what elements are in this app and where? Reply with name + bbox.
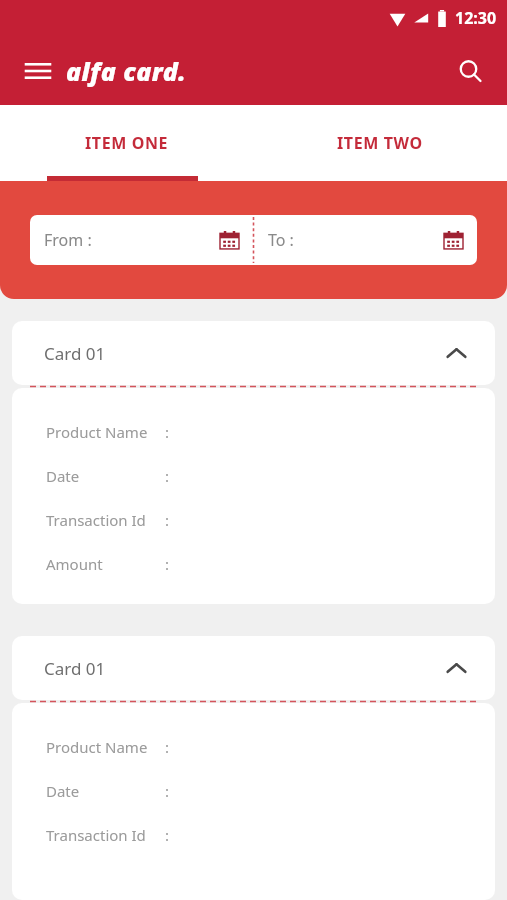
staticText: : bbox=[165, 825, 170, 845]
staticText: : bbox=[165, 781, 170, 801]
staticText: ITEM TWO bbox=[337, 132, 423, 154]
button[interactable]: Card 01 bbox=[12, 636, 495, 700]
staticText: alfa card. bbox=[66, 54, 187, 88]
button[interactable]: ITEM TWO bbox=[253, 105, 507, 181]
staticText: : bbox=[165, 510, 170, 530]
other: Pick date bbox=[444, 231, 463, 250]
button[interactable]: Search bbox=[446, 47, 494, 95]
button[interactable]: Open navigation menu bbox=[14, 47, 62, 95]
other: Pick date bbox=[220, 231, 239, 250]
button[interactable]: To : bbox=[254, 215, 477, 265]
staticText: Card 01 bbox=[44, 657, 106, 680]
staticText: From : bbox=[44, 229, 92, 251]
button[interactable]: From : bbox=[30, 215, 253, 265]
button[interactable]: ITEM ONE bbox=[0, 105, 253, 181]
staticText: ITEM ONE bbox=[85, 132, 169, 154]
staticText: Transaction Id bbox=[46, 510, 146, 530]
staticText: To : bbox=[268, 229, 294, 251]
staticText: Transaction Id bbox=[46, 825, 146, 845]
staticText: : bbox=[165, 554, 170, 574]
staticText: Date bbox=[46, 781, 80, 801]
staticText: Amount bbox=[46, 554, 103, 574]
staticText: Product Name bbox=[46, 422, 148, 442]
other: Collapse card bbox=[441, 653, 471, 683]
other: Collapse card bbox=[441, 338, 471, 368]
staticText: : bbox=[165, 466, 170, 486]
button[interactable]: Card 01 bbox=[12, 321, 495, 385]
staticText: Product Name bbox=[46, 737, 148, 757]
staticText: : bbox=[165, 737, 170, 757]
staticText: Card 01 bbox=[44, 342, 106, 365]
staticText: 12:30 bbox=[455, 7, 497, 29]
staticText: : bbox=[165, 422, 170, 442]
staticText: Date bbox=[46, 466, 80, 486]
